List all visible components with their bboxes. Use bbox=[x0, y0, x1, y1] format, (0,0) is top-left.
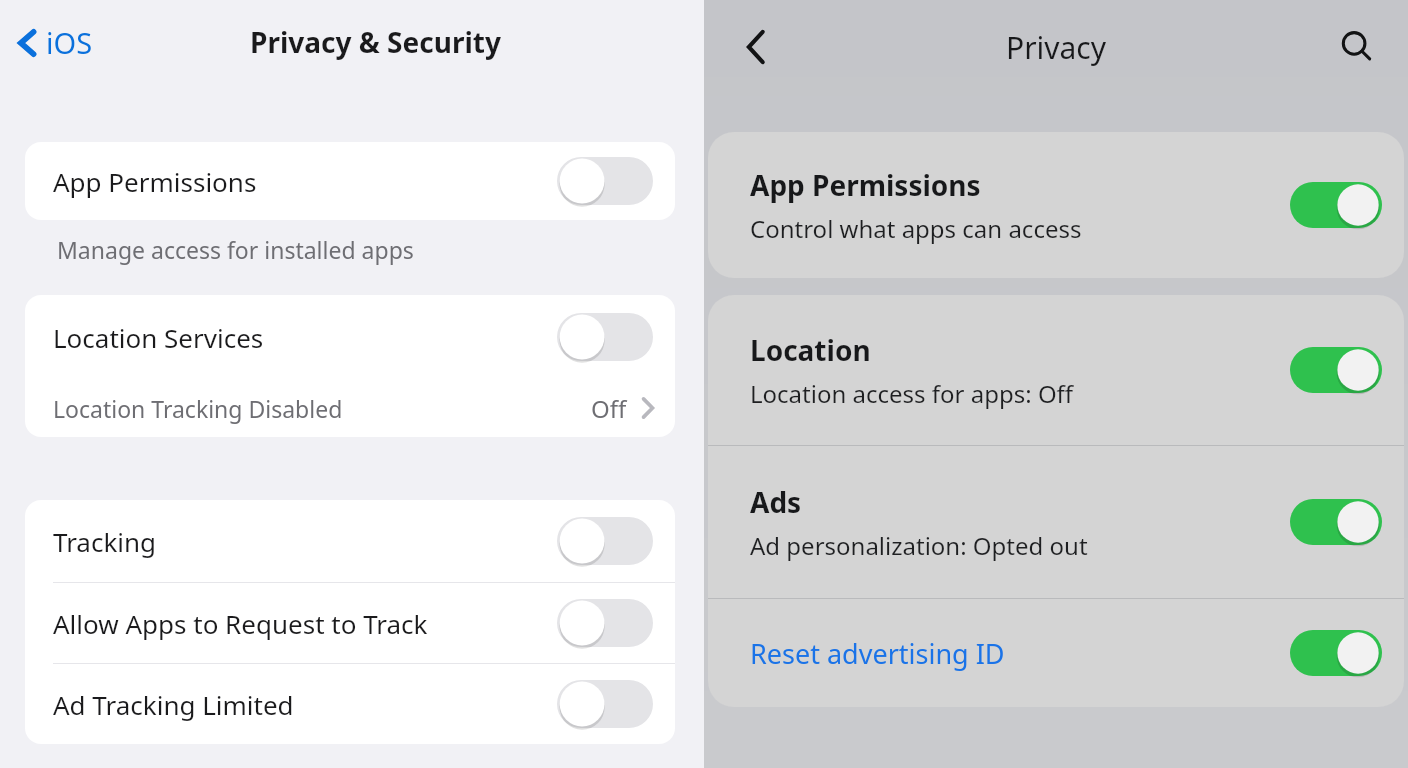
staticText: Off bbox=[591, 392, 627, 425]
staticText: Location bbox=[750, 331, 871, 369]
button[interactable]: Ads bbox=[708, 446, 1404, 598]
staticText: App Permissions bbox=[53, 164, 257, 199]
staticText: Allow Apps to Request to Track bbox=[53, 606, 428, 641]
staticText: Privacy & Security bbox=[250, 23, 501, 61]
button[interactable]: Back bbox=[728, 19, 784, 75]
staticText: Ads bbox=[750, 483, 802, 521]
button[interactable]: Reset advertising ID bbox=[708, 599, 1404, 707]
button[interactable]: App Permissions bbox=[708, 132, 1404, 278]
button[interactable]: Search bbox=[1328, 18, 1386, 76]
button[interactable]: Allow Apps to Request to Track bbox=[25, 583, 675, 663]
staticText: Reset advertising ID bbox=[750, 635, 1005, 672]
staticText: Ad personalization: Opted out bbox=[750, 529, 1088, 562]
button[interactable]: App Permissions bbox=[25, 142, 675, 220]
button[interactable]: Ad Tracking Limited bbox=[25, 664, 675, 744]
staticText: Control what apps can access bbox=[750, 212, 1082, 245]
button[interactable]: iOS bbox=[10, 17, 99, 68]
staticText: Location Services bbox=[53, 320, 264, 355]
staticText: iOS bbox=[46, 23, 93, 62]
staticText: Location access for apps: Off bbox=[750, 377, 1074, 410]
staticText: Ad Tracking Limited bbox=[53, 687, 294, 722]
button[interactable]: Tracking bbox=[25, 500, 675, 582]
button[interactable]: Location Services bbox=[25, 295, 675, 379]
button[interactable]: Location bbox=[708, 295, 1404, 445]
staticText: Manage access for installed apps bbox=[57, 234, 414, 265]
staticText: App Permissions bbox=[750, 166, 981, 204]
staticText: Tracking bbox=[53, 524, 157, 559]
staticText: Location Tracking Disabled bbox=[53, 393, 343, 424]
staticText: Privacy bbox=[1006, 27, 1107, 68]
button[interactable]: Location Tracking Disabled bbox=[25, 379, 675, 437]
